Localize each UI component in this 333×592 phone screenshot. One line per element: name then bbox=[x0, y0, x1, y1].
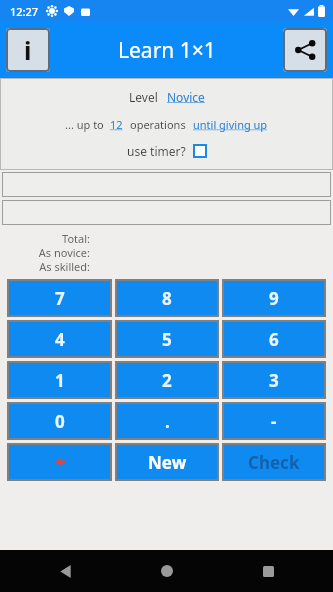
button[interactable]: 12 bbox=[110, 117, 123, 132]
button[interactable]: 0 bbox=[7, 402, 112, 440]
staticText: 6 bbox=[269, 328, 279, 351]
button[interactable]: Info bbox=[6, 28, 50, 72]
staticText: 9 bbox=[269, 287, 279, 310]
button[interactable]: 1 bbox=[7, 361, 112, 399]
staticText: use timer? bbox=[127, 143, 186, 159]
staticText: 1 bbox=[55, 369, 65, 392]
button[interactable]: 4 bbox=[7, 320, 112, 358]
button[interactable]: Check bbox=[222, 443, 326, 481]
button[interactable]: Novice bbox=[167, 89, 205, 105]
staticText: As skilled: bbox=[0, 259, 90, 273]
button[interactable]: 7 bbox=[7, 279, 112, 317]
staticText: Total: bbox=[0, 231, 90, 245]
button[interactable]: 2 bbox=[115, 361, 219, 399]
button[interactable]: 5 bbox=[115, 320, 219, 358]
staticText: Level bbox=[129, 89, 158, 105]
staticText: 5 bbox=[162, 328, 172, 351]
button[interactable]: 6 bbox=[222, 320, 326, 358]
button[interactable]: Back bbox=[48, 554, 82, 588]
staticText: 2 bbox=[162, 369, 172, 392]
staticText: 8 bbox=[162, 287, 172, 310]
button[interactable]: until giving up bbox=[193, 117, 268, 132]
staticText: operations bbox=[130, 117, 186, 132]
button[interactable]: - bbox=[222, 402, 326, 440]
staticText: 3 bbox=[269, 369, 279, 392]
button[interactable]: Share bbox=[283, 28, 327, 72]
button[interactable]: 8 bbox=[115, 279, 219, 317]
staticText: Check bbox=[248, 451, 300, 474]
button[interactable]: . bbox=[115, 402, 219, 440]
staticText: 0 bbox=[55, 410, 65, 433]
staticText: - bbox=[271, 410, 277, 433]
button[interactable]: Recent apps bbox=[251, 554, 285, 588]
button[interactable]: 9 bbox=[222, 279, 326, 317]
staticText: Learn 1×1 bbox=[118, 36, 216, 65]
button[interactable]: use timer? bbox=[127, 143, 207, 159]
button[interactable]: New bbox=[115, 443, 219, 481]
staticText: 7 bbox=[55, 287, 65, 310]
staticText: 4 bbox=[55, 328, 65, 351]
staticText: ... up to bbox=[65, 117, 104, 132]
staticText: 12 bbox=[110, 117, 123, 132]
button[interactable] bbox=[2, 172, 331, 197]
staticText: 12:27 bbox=[10, 4, 39, 19]
button[interactable] bbox=[2, 200, 331, 225]
staticText: New bbox=[148, 451, 187, 474]
staticText: . bbox=[165, 410, 170, 433]
staticText: until giving up bbox=[193, 117, 268, 132]
button[interactable]: Home bbox=[150, 554, 184, 588]
staticText: As novice: bbox=[0, 245, 90, 259]
staticText: Novice bbox=[167, 89, 205, 105]
staticText: i bbox=[24, 33, 32, 67]
button[interactable]: Backspace bbox=[7, 443, 112, 481]
button[interactable]: 3 bbox=[222, 361, 326, 399]
